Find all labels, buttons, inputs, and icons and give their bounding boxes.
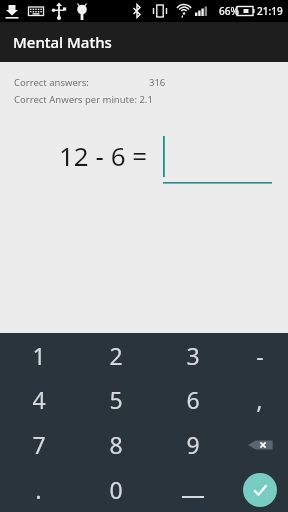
button[interactable]: 9 (154, 422, 231, 467)
staticText: . (35, 473, 42, 506)
button[interactable]: Submit answer (231, 467, 288, 512)
staticText: 1 (32, 340, 46, 371)
staticText: 12 - 6 = (59, 138, 148, 173)
button[interactable]: Backspace (231, 422, 288, 467)
button[interactable]: . (0, 467, 77, 512)
staticText: Mental Maths (13, 32, 112, 52)
staticText: - (256, 340, 264, 371)
button[interactable]: 6 (154, 377, 231, 422)
staticText: 4 (32, 384, 46, 415)
staticText: 7 (32, 429, 46, 460)
button[interactable] (154, 467, 231, 512)
button[interactable]: , (231, 377, 288, 422)
button[interactable]: 3 (154, 333, 231, 377)
button[interactable]: 7 (0, 422, 77, 467)
staticText: 3 (186, 340, 200, 371)
staticText: 6 (186, 384, 200, 415)
staticText: Correct answers: (14, 76, 149, 89)
button[interactable]: - (231, 333, 288, 377)
staticText: 316 (149, 76, 166, 89)
staticText: 8 (109, 429, 123, 460)
staticText: 5 (109, 384, 123, 415)
staticText: 21:19 (257, 4, 283, 18)
button[interactable]: 4 (0, 377, 77, 422)
staticText: 2 (109, 340, 123, 371)
staticText: 0 (109, 474, 123, 505)
button[interactable]: 1 (0, 333, 77, 377)
staticText: 9 (186, 429, 200, 460)
staticText: , (256, 383, 263, 416)
button[interactable]: 5 (77, 377, 154, 422)
staticText: Correct Anwers per minute: 2.1 (14, 93, 153, 106)
button[interactable]: 0 (77, 467, 154, 512)
staticText: 66% (219, 4, 239, 18)
button[interactable]: 2 (77, 333, 154, 377)
button[interactable]: 8 (77, 422, 154, 467)
